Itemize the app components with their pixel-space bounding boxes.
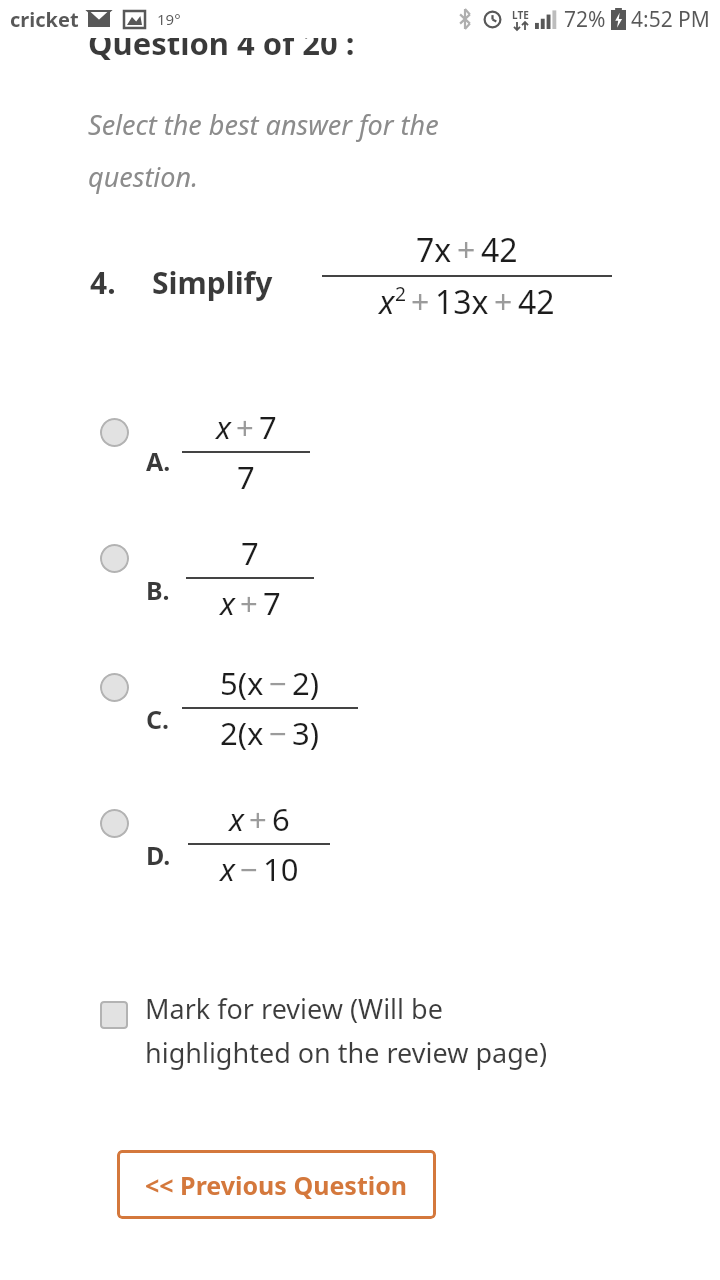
staticText: 19°: [157, 9, 181, 29]
button[interactable]: Option D.: [100, 809, 129, 838]
staticText: cricket: [10, 6, 79, 33]
button[interactable]: Mark for review (Will be highlighted on …: [92, 990, 572, 1070]
staticText: 72%: [564, 5, 606, 34]
staticText: +: [457, 228, 476, 272]
button[interactable]: Option B.: [100, 544, 129, 573]
staticText: +: [236, 406, 254, 448]
staticText: 42: [481, 228, 518, 272]
staticText: Simplify: [152, 262, 273, 303]
staticText: 42: [518, 280, 555, 324]
staticText: x: [379, 280, 395, 324]
staticText: +: [411, 280, 430, 324]
staticText: −: [269, 662, 287, 704]
staticText: 7x: [416, 228, 452, 272]
staticText: 2: [395, 280, 406, 306]
staticText: 2(x: [220, 712, 264, 754]
staticText: −: [269, 712, 287, 754]
staticText: B.: [146, 573, 170, 607]
staticText: +: [249, 798, 267, 840]
staticText: +: [240, 582, 258, 624]
staticText: 4:52 PM: [631, 5, 710, 34]
staticText: x: [229, 798, 244, 840]
button[interactable]: [88, 418, 568, 538]
staticText: 7: [263, 582, 281, 624]
staticText: 4.: [90, 262, 116, 303]
button[interactable]: Option C.: [100, 673, 129, 702]
staticText: x: [220, 848, 235, 890]
button[interactable]: << Previous Question: [117, 1150, 436, 1219]
staticText: D.: [146, 838, 171, 872]
staticText: Select the best answer for the question.: [88, 106, 439, 195]
staticText: 13x: [435, 280, 489, 324]
staticText: x: [220, 582, 235, 624]
staticText: 7: [241, 532, 259, 574]
button[interactable]: [88, 673, 568, 793]
staticText: 6: [272, 798, 290, 840]
staticText: 5(x: [220, 662, 264, 704]
button[interactable]: [88, 809, 568, 929]
staticText: Question 4 of 20 :: [88, 22, 355, 64]
staticText: C.: [146, 702, 170, 736]
button[interactable]: Option A.: [100, 418, 129, 447]
staticText: LTE: [512, 8, 529, 22]
staticText: 2): [292, 662, 320, 704]
staticText: 3): [292, 712, 320, 754]
staticText: x: [216, 406, 231, 448]
staticText: << Previous Question: [145, 1168, 408, 1202]
staticText: 7: [237, 456, 255, 498]
staticText: Mark for review (Will be highlighted on …: [145, 990, 548, 1070]
staticText: 7: [259, 406, 277, 448]
staticText: +: [494, 280, 513, 324]
button[interactable]: [88, 544, 568, 664]
staticText: 10: [263, 848, 299, 890]
staticText: −: [240, 848, 258, 890]
staticText: A.: [146, 444, 171, 478]
